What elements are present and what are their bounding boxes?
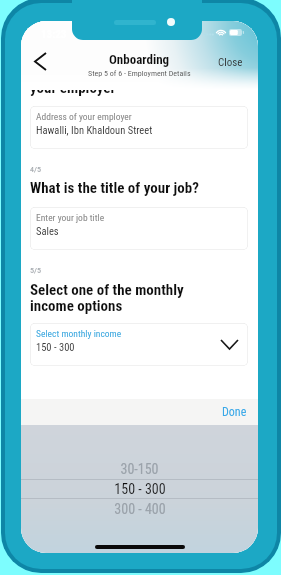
staticText: Select monthly income — [36, 328, 122, 339]
staticText: 300 - 400 — [114, 501, 166, 517]
staticText: Sales — [36, 225, 59, 237]
staticText: 150 - 300 — [114, 481, 166, 497]
staticText: 5/5 — [30, 266, 41, 275]
staticText: Done — [222, 405, 247, 419]
staticText: Enter your job title — [36, 212, 105, 223]
staticText: 4/5 — [30, 165, 41, 174]
staticText: 30-150 — [120, 461, 159, 477]
staticText: 150 - 300 — [36, 341, 75, 353]
button[interactable]: Back — [30, 48, 56, 74]
button[interactable]: Enter your job title — [30, 207, 248, 250]
staticText: Address of your employer — [36, 111, 132, 122]
staticText: Hawalli, Ibn Khaldoun Street — [36, 124, 153, 136]
staticText: Step 5 of 6 - Employment Details — [88, 69, 191, 78]
button[interactable]: 30-150 — [21, 459, 258, 479]
button[interactable]: 150 - 300 — [21, 479, 258, 499]
staticText: Close — [218, 56, 243, 69]
staticText: Select one of the monthly income options — [30, 281, 184, 314]
button[interactable]: Done — [211, 400, 258, 424]
button[interactable]: Select monthly income — [30, 323, 248, 366]
button[interactable]: Address of your employer — [30, 106, 248, 149]
button[interactable]: 300 - 400 — [21, 499, 258, 519]
button[interactable]: Close — [209, 51, 252, 74]
staticText: your employer — [30, 79, 116, 97]
staticText: Onboarding — [109, 52, 170, 67]
staticText: What is the title of your job? — [30, 179, 199, 197]
